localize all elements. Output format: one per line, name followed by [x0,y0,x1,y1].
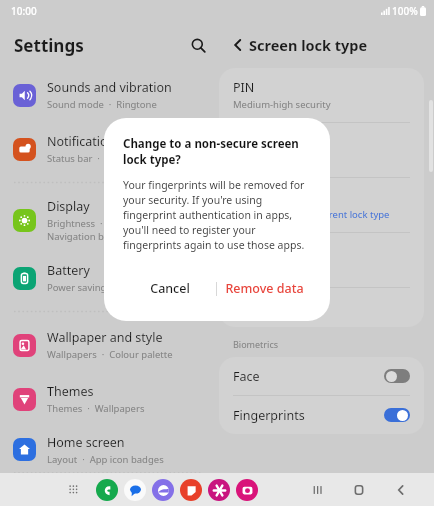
staticText: Home screen [47,434,125,451]
staticText: Face [233,368,260,385]
button[interactable]: Remove data [217,274,311,303]
button[interactable]: Notifications [6,122,209,176]
staticText: Settings [14,34,84,57]
staticText: Status bar · Do not disturb [47,152,170,165]
staticText: Power saving · Charging [47,281,160,294]
staticText: Themes [47,383,94,400]
staticText: Sounds and vibration [47,79,172,96]
button[interactable]: Back [224,31,252,59]
staticText: Sound mode · Ringtone [47,98,157,111]
staticText: Your fingerprints will be removed for yo… [123,178,311,252]
button[interactable]: Gallery [208,479,230,501]
button[interactable]: Home screen [6,426,209,473]
staticText: Themes · Wallpapers [47,402,145,415]
staticText: Screen lock type [249,35,368,55]
button[interactable]: Back [380,475,422,505]
staticText: Battery [47,262,90,279]
button[interactable]: Recents [296,475,338,505]
button[interactable]: Cancel [123,274,216,303]
button[interactable]: Display [6,189,209,251]
staticText: 100% [392,4,418,18]
button[interactable]: Wallpaper and style [6,318,209,372]
staticText: PIN [233,79,255,96]
staticText: Wallpaper and style [47,329,163,346]
button[interactable]: Battery [6,251,209,305]
button[interactable]: Messages [124,479,146,501]
button[interactable]: Search [184,31,212,59]
button[interactable]: Pattern [219,178,424,232]
button[interactable]: Swipe [219,233,424,287]
button[interactable]: Face [219,357,424,395]
staticText: Change to a non-secure screen lock type? [123,136,311,168]
staticText: Password [233,134,290,151]
button[interactable]: All apps [63,479,85,501]
staticText: Display [47,198,90,215]
button[interactable]: Camera [236,479,258,501]
staticText: Biometrics [233,338,279,350]
staticText: Layout · App icon badges [47,453,164,466]
button[interactable]: Phone [96,479,118,501]
staticText: Pattern [233,189,277,206]
staticText: Remove data [225,280,304,297]
staticText: Medium security, [233,208,313,221]
button[interactable]: Home [338,475,380,505]
staticText: Wallpapers · Colour palette [47,348,173,361]
staticText: Cancel [150,280,190,297]
staticText: Fingerprints [233,407,305,424]
staticText: Navigation bar [47,230,114,243]
button[interactable]: Password [219,123,424,177]
staticText: Medium-high security [233,98,331,111]
staticText: Brightness · Eye comfort shield · [47,217,198,230]
button[interactable]: PIN [219,68,424,122]
staticText: 10:00 [11,4,37,18]
button[interactable]: Internet [152,479,174,501]
button[interactable]: None [219,288,424,327]
staticText: Swipe [233,244,268,261]
button[interactable]: Current lock type [313,208,390,221]
button[interactable]: Galaxy Store [180,479,202,501]
staticText: Notifications [47,133,122,150]
button[interactable]: Themes [6,372,209,426]
button[interactable]: Sounds and vibration [6,68,209,122]
button[interactable]: Fingerprints [219,396,424,434]
